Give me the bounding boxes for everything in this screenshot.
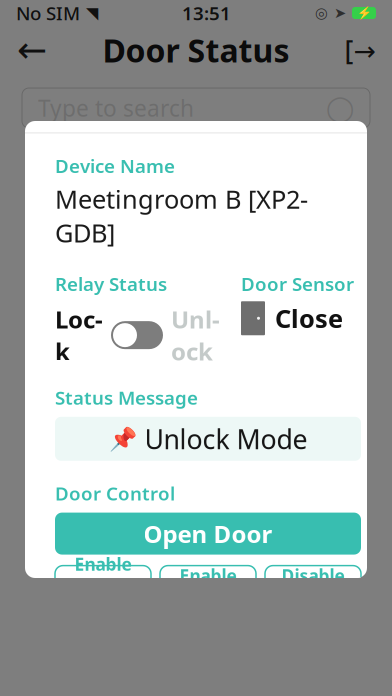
button[interactable]: Close bbox=[323, 85, 367, 129]
staticText: ✕ bbox=[334, 92, 355, 121]
staticText: Meetingroom B [XP2-GDB] bbox=[55, 182, 308, 249]
staticText: Unlock Mode bbox=[73, 577, 133, 623]
button[interactable]: Open Door bbox=[55, 513, 361, 555]
staticText: Device Name bbox=[55, 153, 175, 178]
staticText: Enable bbox=[74, 553, 131, 576]
staticText: Close bbox=[275, 301, 343, 335]
staticText: Status Message bbox=[55, 385, 198, 410]
button[interactable]: Back bbox=[8, 28, 56, 72]
button[interactable]: Disable bbox=[265, 566, 361, 610]
staticText: Door Sensor bbox=[241, 271, 354, 296]
staticText: ◯ bbox=[326, 94, 354, 122]
staticText: ◎ bbox=[315, 5, 328, 21]
button[interactable]: Enable bbox=[160, 566, 256, 610]
staticText: Unlock Mode bbox=[144, 421, 307, 456]
staticText: Door Control bbox=[55, 481, 175, 506]
staticText: ← bbox=[17, 30, 47, 70]
staticText: ⚡ bbox=[356, 6, 371, 20]
staticText: ◥ bbox=[86, 4, 98, 22]
staticText: 📌 bbox=[108, 426, 136, 452]
staticText: Disable bbox=[281, 564, 344, 587]
staticText: Lock bbox=[55, 303, 103, 367]
staticText: Unlock bbox=[171, 303, 220, 367]
staticText: No SIM bbox=[16, 1, 80, 25]
staticText: Enable bbox=[179, 564, 236, 587]
staticText: ➤ bbox=[334, 5, 346, 21]
button[interactable]: Lock bbox=[55, 303, 220, 367]
staticText: 13:51 bbox=[182, 1, 231, 25]
staticText: Door Status bbox=[102, 29, 289, 71]
staticText: [→ bbox=[344, 32, 375, 68]
button[interactable]: Log out bbox=[336, 28, 384, 72]
staticText: Relay Status bbox=[55, 271, 167, 296]
staticText: Open Door bbox=[143, 518, 272, 550]
button[interactable]: Enable bbox=[55, 566, 151, 610]
staticText: Door Info And Control bbox=[65, 91, 327, 123]
staticText: Type to search bbox=[38, 93, 194, 123]
